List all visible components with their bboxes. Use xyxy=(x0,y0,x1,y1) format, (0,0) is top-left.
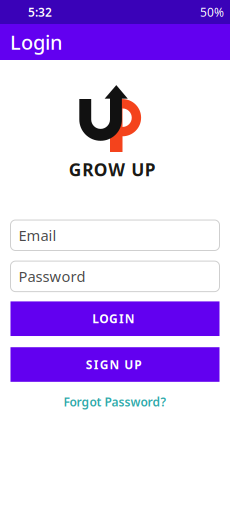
staticText: Password xyxy=(18,267,85,286)
staticText: SIGN UP xyxy=(86,356,144,372)
button[interactable]: Forgot Password? xyxy=(59,390,170,414)
staticText: LOGIN xyxy=(92,311,138,327)
staticText: GROW UP xyxy=(69,158,161,181)
button[interactable]: LOGIN xyxy=(0,301,230,336)
staticText: Login xyxy=(10,29,63,55)
staticText: 5:32 xyxy=(28,4,52,20)
button[interactable]: SIGN UP xyxy=(0,347,230,382)
staticText: Email xyxy=(18,225,56,245)
staticText: Forgot Password? xyxy=(63,394,166,410)
staticText: 50% xyxy=(200,4,224,20)
